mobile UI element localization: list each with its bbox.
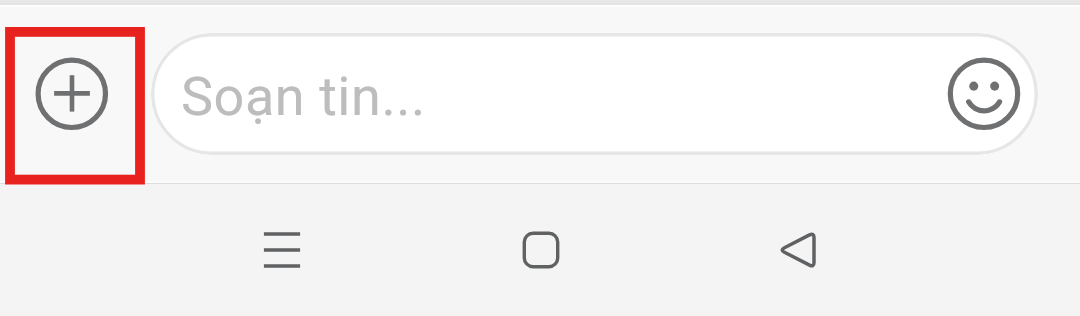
staticText: Soạn tin...: [181, 65, 426, 128]
button[interactable]: Back: [737, 210, 857, 290]
button[interactable]: Soạn tin...: [151, 33, 1038, 155]
button[interactable]: Add attachment: [5, 27, 145, 185]
button[interactable]: Emoji: [942, 52, 1026, 136]
button[interactable]: Home: [481, 210, 601, 290]
button[interactable]: Recent apps: [222, 210, 342, 290]
